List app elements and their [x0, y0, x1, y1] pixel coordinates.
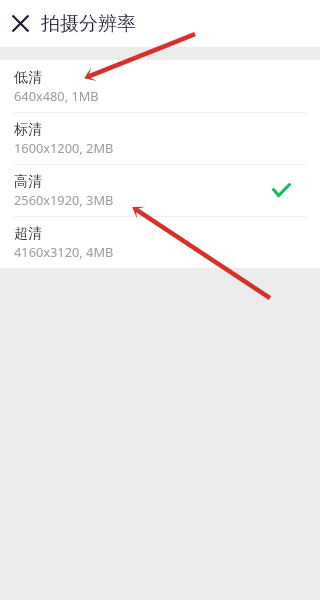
staticText: 拍摄分辨率 [41, 12, 136, 36]
staticText: 标清 [14, 121, 42, 139]
staticText: 高清 [14, 173, 42, 191]
staticText: 低清 [14, 69, 42, 87]
button[interactable]: 标清 [0, 112, 320, 164]
staticText: 2560x1920, 3MB [14, 191, 114, 208]
button[interactable]: Close [0, 0, 41, 47]
staticText: 1600x1200, 2MB [14, 139, 114, 156]
staticText: 640x480, 1MB [14, 87, 99, 104]
staticText: 4160x3120, 4MB [14, 243, 114, 260]
button[interactable]: 低清 [0, 60, 320, 112]
button[interactable]: 高清 [0, 164, 320, 216]
staticText: 超清 [14, 225, 42, 243]
button[interactable]: 超清 [0, 216, 320, 268]
